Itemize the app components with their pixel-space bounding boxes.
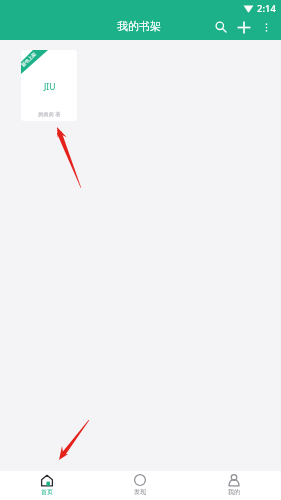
staticText: 我的 <box>228 488 240 496</box>
staticText: 新书上架 <box>21 51 37 68</box>
button[interactable]: 首页 <box>0 471 93 500</box>
button[interactable]: More options <box>256 17 276 37</box>
staticText: 首页 <box>41 488 53 496</box>
button[interactable]: Add book <box>234 17 254 37</box>
button[interactable]: 新书上架 <box>21 50 77 121</box>
button[interactable]: Search <box>211 17 231 37</box>
staticText: JIU <box>44 81 56 93</box>
button[interactable]: 我的 <box>187 471 281 500</box>
staticText: 发现 <box>134 488 146 496</box>
button[interactable]: 发现 <box>93 471 187 500</box>
staticText: 我的书架 <box>117 19 161 33</box>
staticText: 匆匆匆 著 <box>38 110 61 117</box>
staticText: 2:14 <box>257 2 276 15</box>
